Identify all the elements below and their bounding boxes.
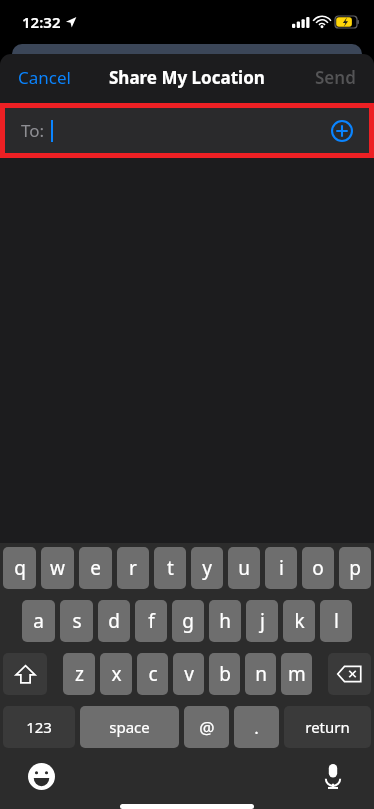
button[interactable]: Add contact bbox=[327, 116, 357, 146]
staticText: y bbox=[202, 555, 212, 581]
staticText: s bbox=[72, 608, 82, 634]
button[interactable]: p bbox=[339, 547, 371, 589]
staticText: u bbox=[238, 555, 250, 581]
staticText: 123 bbox=[26, 717, 52, 737]
staticText: r bbox=[129, 555, 137, 581]
button[interactable]: h bbox=[209, 600, 241, 642]
button[interactable]: z bbox=[63, 653, 95, 695]
staticText: e bbox=[90, 555, 101, 581]
staticText: n bbox=[255, 661, 267, 687]
staticText: Send bbox=[315, 66, 356, 89]
button[interactable]: . bbox=[234, 706, 279, 748]
button[interactable]: i bbox=[265, 547, 297, 589]
button[interactable]: @ bbox=[184, 706, 229, 748]
button[interactable]: Emoji bbox=[24, 759, 58, 793]
staticText: b bbox=[219, 661, 231, 687]
staticText: i bbox=[279, 555, 284, 581]
staticText: w bbox=[50, 555, 65, 581]
button[interactable]: v bbox=[173, 653, 204, 695]
staticText: o bbox=[312, 555, 324, 581]
staticText: p bbox=[349, 555, 361, 581]
staticText: To: bbox=[21, 119, 45, 142]
button[interactable]: t bbox=[154, 547, 186, 589]
staticText: m bbox=[288, 661, 306, 687]
staticText: z bbox=[75, 661, 84, 687]
staticText: g bbox=[182, 608, 194, 634]
button[interactable]: y bbox=[191, 547, 223, 589]
staticText: x bbox=[111, 661, 122, 687]
staticText: Cancel bbox=[18, 66, 71, 89]
staticText: l bbox=[334, 608, 339, 634]
button[interactable]: q bbox=[3, 547, 36, 589]
staticText: c bbox=[148, 661, 158, 687]
button[interactable]: space bbox=[80, 706, 179, 748]
button[interactable]: k bbox=[283, 600, 315, 642]
button[interactable]: s bbox=[60, 600, 93, 642]
button[interactable]: x bbox=[100, 653, 132, 695]
button[interactable]: Cancel bbox=[8, 60, 81, 95]
staticText: t bbox=[167, 555, 174, 581]
staticText: d bbox=[108, 608, 120, 634]
button[interactable]: Send bbox=[305, 60, 366, 95]
button[interactable]: w bbox=[41, 547, 74, 589]
button[interactable]: d bbox=[98, 600, 130, 642]
staticText: Share My Location bbox=[109, 66, 265, 89]
staticText: 12:32 bbox=[22, 12, 61, 32]
staticText: . bbox=[254, 716, 259, 739]
button[interactable]: To: bbox=[5, 108, 369, 153]
button[interactable]: return bbox=[284, 706, 371, 748]
button[interactable]: g bbox=[172, 600, 204, 642]
button[interactable]: Shift bbox=[3, 653, 47, 695]
button[interactable]: a bbox=[22, 600, 55, 642]
button[interactable]: n bbox=[245, 653, 276, 695]
button[interactable]: Dictation bbox=[316, 759, 350, 793]
button[interactable]: 123 bbox=[3, 706, 75, 748]
staticText: k bbox=[294, 608, 305, 634]
button[interactable]: f bbox=[135, 600, 167, 642]
staticText: space bbox=[109, 717, 150, 737]
button[interactable]: r bbox=[117, 547, 149, 589]
staticText: h bbox=[219, 608, 231, 634]
button[interactable]: Backspace bbox=[328, 653, 371, 695]
button[interactable]: b bbox=[209, 653, 240, 695]
button[interactable]: u bbox=[228, 547, 260, 589]
staticText: a bbox=[33, 608, 44, 634]
button[interactable]: m bbox=[281, 653, 312, 695]
staticText: q bbox=[14, 555, 26, 581]
button[interactable]: j bbox=[246, 600, 278, 642]
staticText: j bbox=[260, 608, 265, 634]
button[interactable]: l bbox=[320, 600, 352, 642]
staticText: @ bbox=[199, 716, 215, 739]
staticText: return bbox=[305, 717, 350, 737]
button[interactable]: c bbox=[137, 653, 168, 695]
button[interactable]: e bbox=[79, 547, 112, 589]
staticText: v bbox=[184, 661, 194, 687]
staticText: f bbox=[148, 608, 155, 634]
button[interactable]: o bbox=[302, 547, 334, 589]
